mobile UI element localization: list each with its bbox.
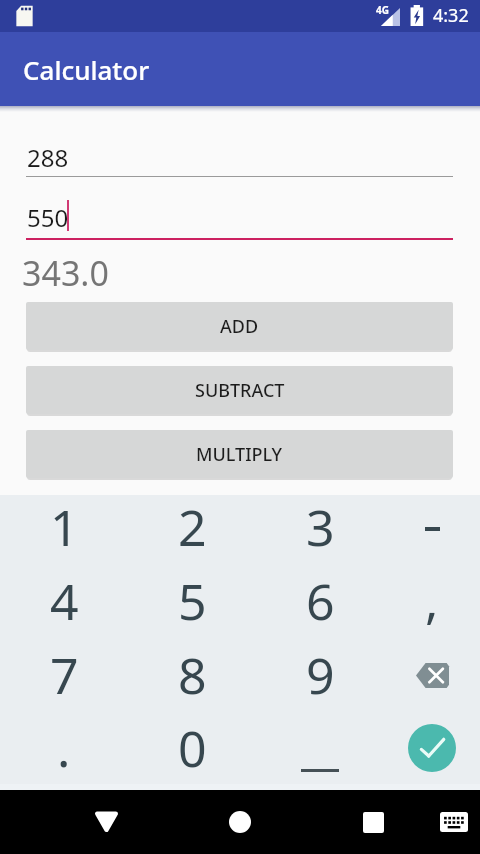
button[interactable]: .	[0, 711, 128, 785]
button[interactable]: 7	[0, 638, 128, 712]
staticText: 9	[306, 641, 335, 709]
staticText: 4	[50, 567, 79, 635]
button[interactable]	[256, 711, 384, 785]
staticText: 1	[50, 493, 79, 561]
staticText: 288	[27, 141, 69, 174]
button[interactable]	[384, 490, 480, 564]
staticText: Calculator	[23, 52, 150, 87]
button[interactable]: Enter	[384, 711, 480, 785]
button[interactable]: Enter	[408, 724, 456, 772]
button[interactable]: Recent apps	[349, 798, 397, 846]
button[interactable]: 288	[26, 136, 453, 177]
button[interactable]: 3	[256, 490, 384, 564]
staticText: MULTIPLY	[196, 442, 283, 467]
staticText: 8	[178, 641, 207, 709]
button[interactable]: 9	[256, 638, 384, 712]
staticText: 3	[306, 493, 335, 561]
button[interactable]: ,	[384, 564, 480, 638]
staticText: 7	[50, 641, 79, 709]
staticText: .	[57, 714, 71, 782]
button[interactable]: MULTIPLY	[26, 430, 453, 478]
staticText: 0	[178, 714, 207, 782]
button[interactable]: ADD	[26, 302, 453, 350]
staticText: 5	[178, 567, 207, 635]
staticText: ADD	[220, 314, 259, 339]
button[interactable]: 550	[26, 196, 453, 240]
staticText: 343.0	[22, 250, 109, 296]
button[interactable]: 4	[0, 564, 128, 638]
button[interactable]: Backspace	[406, 649, 458, 701]
staticText: 6	[306, 567, 335, 635]
button[interactable]: 1	[0, 490, 128, 564]
staticText: 4:32	[433, 3, 469, 28]
button[interactable]: SUBTRACT	[26, 366, 453, 414]
staticText: 2	[178, 493, 207, 561]
button[interactable]: Switch keyboard	[430, 798, 478, 846]
staticText: 550	[27, 201, 69, 234]
button[interactable]: 8	[128, 638, 256, 712]
button[interactable]: 5	[128, 564, 256, 638]
button[interactable]: 2	[128, 490, 256, 564]
staticText: ,	[425, 566, 439, 634]
button[interactable]: Back	[82, 798, 130, 846]
staticText: SUBTRACT	[195, 378, 285, 403]
button[interactable]: Backspace	[384, 638, 480, 712]
button[interactable]: Home	[216, 798, 264, 846]
button[interactable]: 0	[128, 711, 256, 785]
button[interactable]: 6	[256, 564, 384, 638]
staticText: 4G	[376, 3, 389, 17]
